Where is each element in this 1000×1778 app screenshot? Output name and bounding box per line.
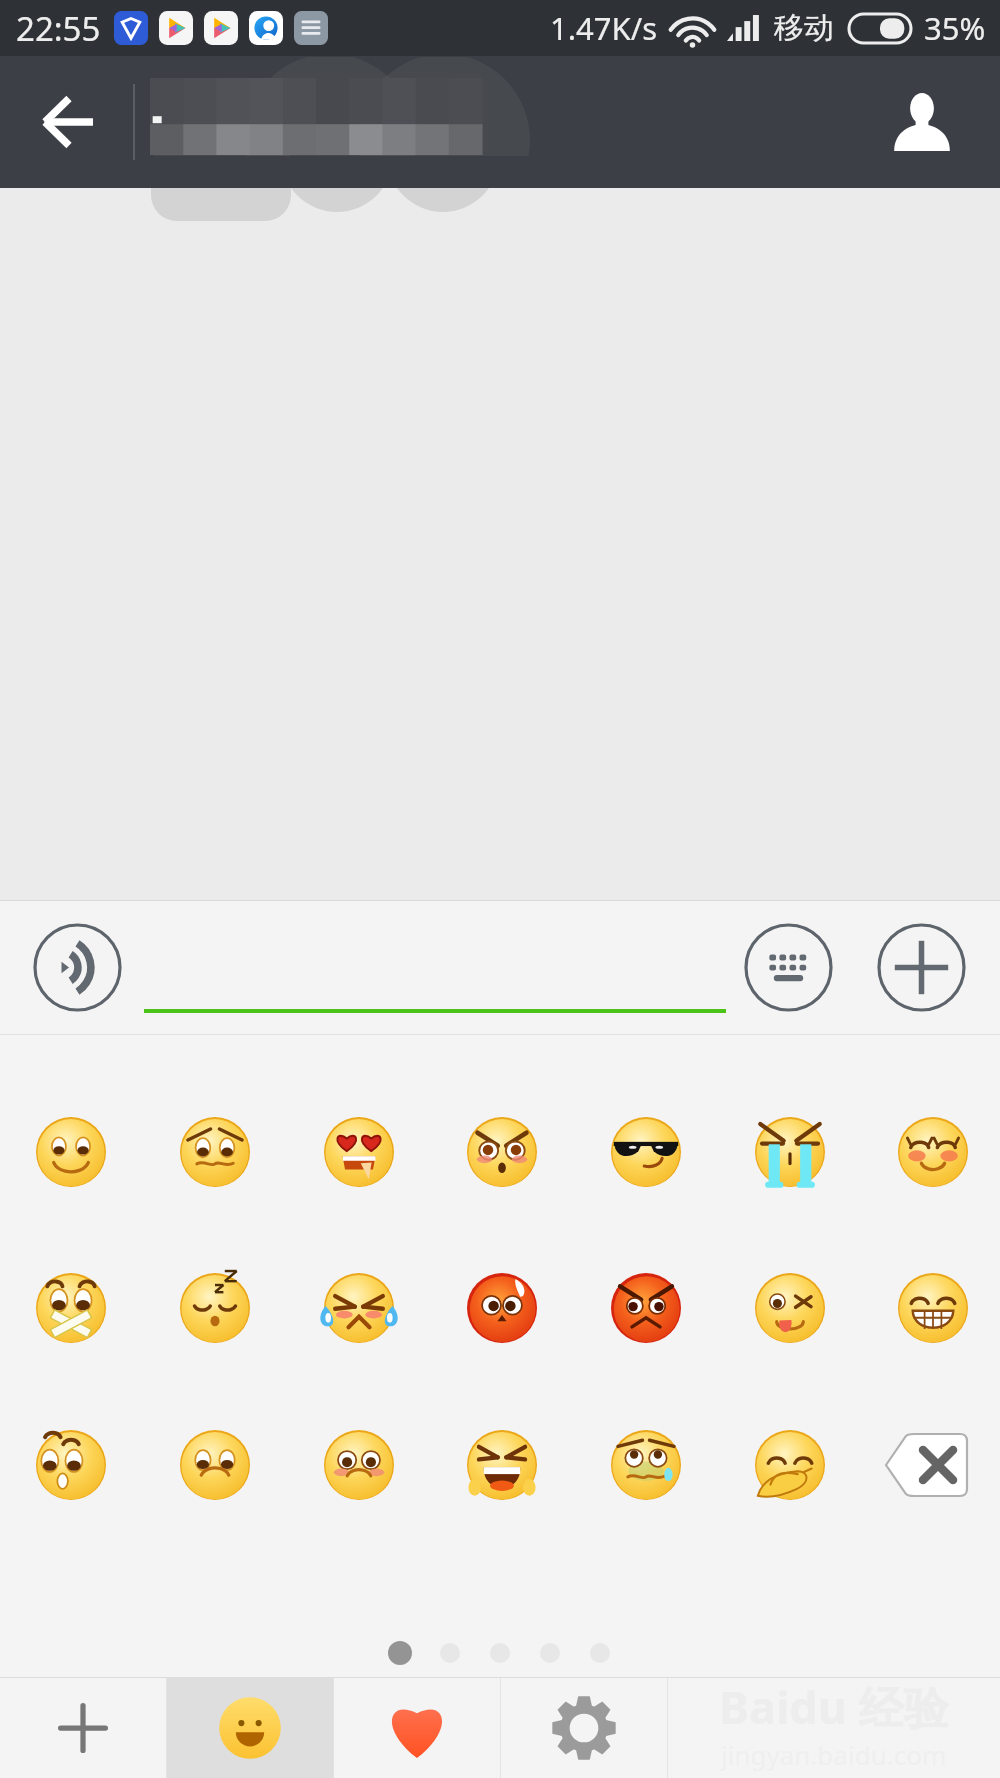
- button[interactable]: Emoji 1: [5, 1096, 137, 1208]
- button[interactable]: More options: [877, 923, 966, 1012]
- button[interactable]: Emoji 18: [436, 1409, 568, 1521]
- button[interactable]: Emoji 5: [580, 1096, 712, 1208]
- button[interactable]: Add sticker pack: [0, 1678, 166, 1778]
- button[interactable]: Emoji 17: [293, 1409, 425, 1521]
- staticText: 1.47K/s: [550, 7, 658, 49]
- button[interactable]: Emoji 2: [149, 1096, 281, 1208]
- staticText: 35%: [924, 7, 986, 49]
- button[interactable]: Emoji 15: [5, 1409, 137, 1521]
- button[interactable]: Emoji 16: [149, 1409, 281, 1521]
- button[interactable]: Emoji 19: [580, 1409, 712, 1521]
- button[interactable]: Favorites: [334, 1678, 500, 1778]
- button[interactable]: Emoji 3: [293, 1096, 425, 1208]
- button[interactable]: Settings: [501, 1678, 667, 1778]
- button[interactable]: Emoji 10: [293, 1252, 425, 1364]
- button[interactable]: Back: [12, 56, 124, 188]
- button[interactable]: Emoji 6: [724, 1096, 856, 1208]
- button[interactable]: Keyboard: [744, 923, 833, 1012]
- button[interactable]: Emoji 12: [580, 1252, 712, 1364]
- button[interactable]: Emoji 14: [867, 1252, 999, 1364]
- button[interactable]: Emoji 9: [149, 1252, 281, 1364]
- button[interactable]: Emoji 8: [5, 1252, 137, 1364]
- button[interactable]: Emoji 11: [436, 1252, 568, 1364]
- staticText: 移动: [774, 9, 834, 47]
- button[interactable]: Emoji 4: [436, 1096, 568, 1208]
- button[interactable]: Emoji 20: [724, 1409, 856, 1521]
- button[interactable]: Contact profile: [866, 56, 978, 188]
- button[interactable]: Backspace: [867, 1409, 999, 1521]
- staticText: 22:55: [16, 6, 101, 51]
- button[interactable]: Voice input: [33, 923, 122, 1012]
- button[interactable]: Emoji 7: [867, 1096, 999, 1208]
- staticText: Baidu 经验: [719, 1676, 949, 1737]
- button[interactable]: Emoji 13: [724, 1252, 856, 1364]
- button[interactable]: Emoji: [167, 1678, 333, 1778]
